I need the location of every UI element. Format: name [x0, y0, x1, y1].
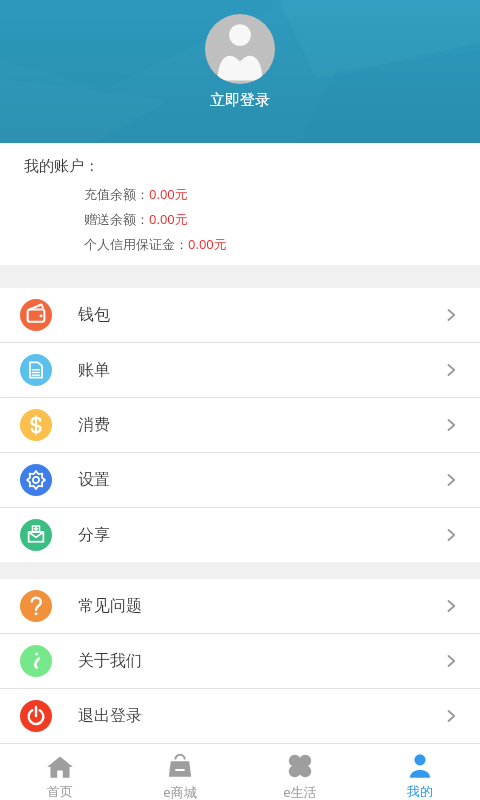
button[interactable]: 关于我们	[0, 634, 480, 688]
staticText: 立即登录	[210, 91, 270, 110]
button[interactable]: 我的	[360, 744, 480, 800]
staticText: 退出登录	[78, 706, 142, 726]
button[interactable]: 退出登录	[0, 689, 480, 743]
button[interactable]: 分享	[0, 508, 480, 562]
staticText: 常见问题	[78, 596, 142, 616]
button[interactable]: e商城	[120, 744, 240, 800]
button[interactable]: 账单	[0, 343, 480, 397]
staticText: 分享	[78, 525, 110, 545]
staticText: e生活	[283, 783, 317, 800]
button[interactable]: 立即登录	[205, 14, 275, 110]
staticText: e商城	[163, 783, 197, 800]
staticText: 我的账户：	[24, 157, 99, 176]
staticText: 设置	[78, 470, 110, 490]
button[interactable]: 消费	[0, 398, 480, 452]
staticText: 账单	[78, 360, 110, 380]
button[interactable]: 设置	[0, 453, 480, 507]
staticText: 关于我们	[78, 651, 142, 671]
staticText: 首页	[47, 783, 73, 799]
button[interactable]: 钱包	[0, 288, 480, 342]
staticText: 赠送余额：0.00元	[84, 210, 188, 228]
button[interactable]: e生活	[240, 744, 360, 800]
staticText: 个人信用保证金：0.00元	[84, 235, 227, 253]
staticText: 钱包	[78, 305, 110, 325]
button[interactable]: 首页	[0, 744, 120, 800]
staticText: 我的	[407, 783, 433, 799]
button[interactable]: 常见问题	[0, 579, 480, 633]
staticText: 消费	[78, 415, 110, 435]
staticText: 充值余额：0.00元	[84, 185, 188, 203]
